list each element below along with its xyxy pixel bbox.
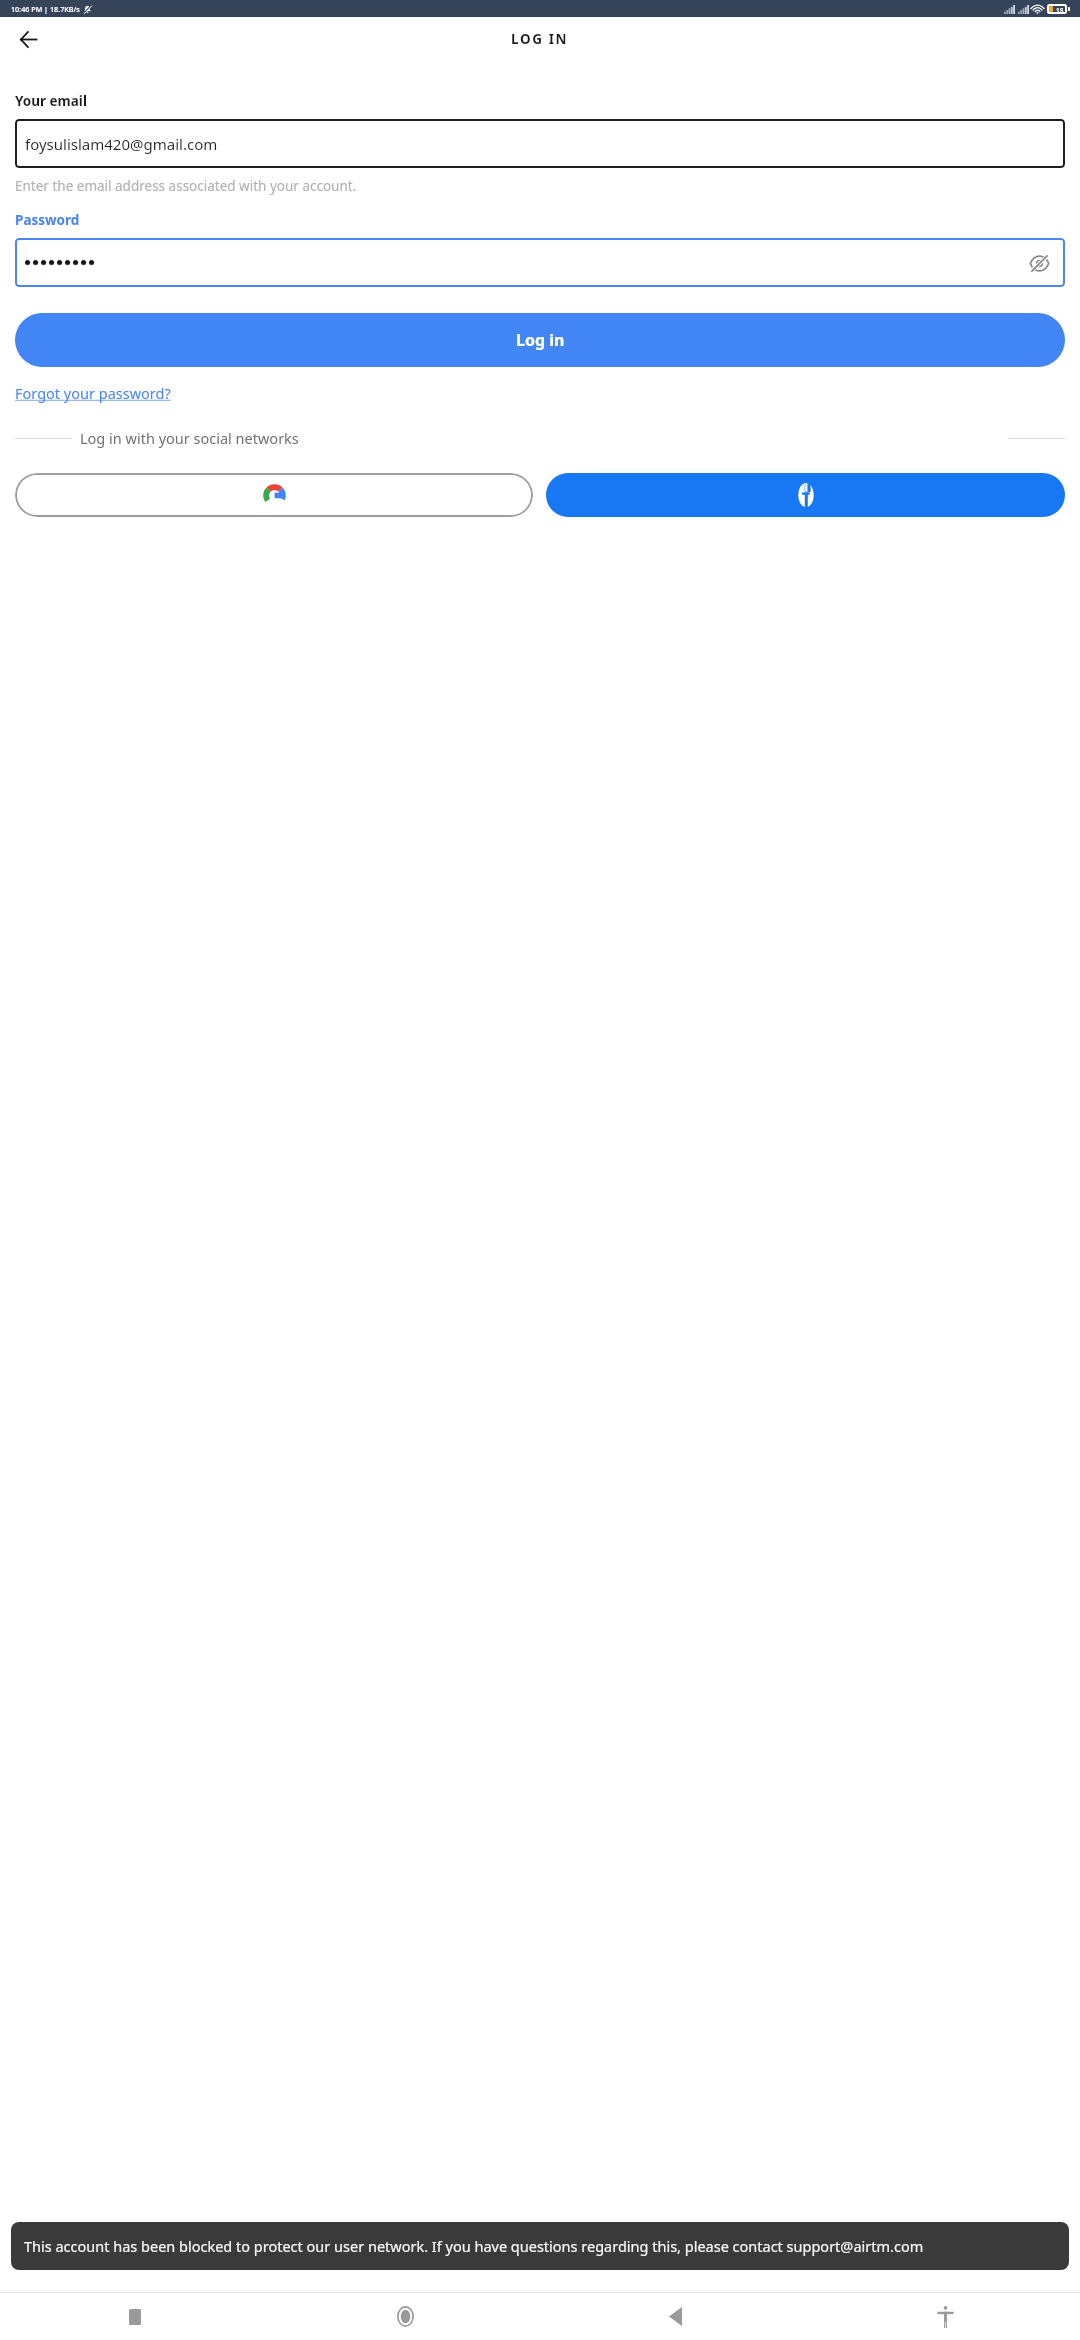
button[interactable]: Forgot your password?	[15, 383, 171, 403]
staticText: foysulislam420@gmail.com	[25, 134, 218, 154]
button[interactable]: Log in	[15, 313, 1065, 367]
staticText: 10:46 PM | 18.7KB/s	[11, 4, 80, 14]
staticText: 18	[1056, 6, 1064, 12]
staticText: LOG IN	[511, 30, 569, 48]
button[interactable]: Show password	[15, 238, 1065, 287]
staticText: Your email	[15, 92, 87, 110]
button[interactable]: Back	[8, 19, 48, 59]
staticText: Password	[15, 211, 80, 229]
button[interactable]: Home	[270, 2293, 540, 2340]
staticText: Log in with your social networks	[80, 428, 1000, 448]
staticText: Log in	[516, 329, 565, 351]
staticText: Forgot your password?	[15, 383, 171, 403]
button[interactable]: Recent apps	[0, 2293, 270, 2340]
button[interactable]: Log in with Facebook	[546, 473, 1065, 517]
button[interactable]: Back	[540, 2293, 810, 2340]
button[interactable]: Accessibility	[810, 2293, 1080, 2340]
button[interactable]: foysulislam420@gmail.com	[15, 119, 1065, 168]
button[interactable]: Log in with Google	[15, 473, 533, 517]
button[interactable]: Show password	[1023, 247, 1055, 279]
staticText: Enter the email address associated with …	[15, 177, 357, 195]
staticText: This account has been blocked to protect…	[24, 2236, 924, 2256]
